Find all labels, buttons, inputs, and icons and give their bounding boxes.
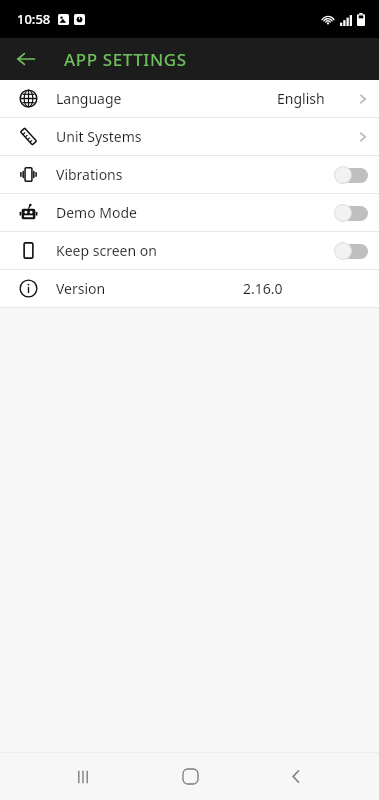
button[interactable]: Back [8,41,44,77]
button[interactable]: Keep screen on [323,232,379,269]
button[interactable]: Vibrations [0,156,379,193]
button[interactable]: Language [0,80,379,117]
staticText: English [277,89,325,108]
staticText: Vibrations [56,165,123,184]
staticText: Demo Mode [56,203,137,222]
staticText: 10:58 [17,10,51,28]
button[interactable]: Back [272,753,320,800]
button[interactable]: Vibrations [323,156,379,193]
staticText: Unit Systems [56,127,142,146]
staticText: Version [56,279,106,298]
button[interactable]: Demo Mode [323,194,379,231]
staticText: APP SETTINGS [64,48,187,71]
staticText: Language [56,89,122,108]
button[interactable]: Unit Systems [0,118,379,155]
button[interactable]: Demo Mode [0,194,379,231]
button[interactable]: Recent apps [59,753,107,800]
staticText: 2.16.0 [243,279,283,298]
staticText: Keep screen on [56,241,157,260]
button[interactable]: Version [0,270,379,307]
button[interactable]: Keep screen on [0,232,379,269]
button[interactable]: Home [166,753,214,800]
